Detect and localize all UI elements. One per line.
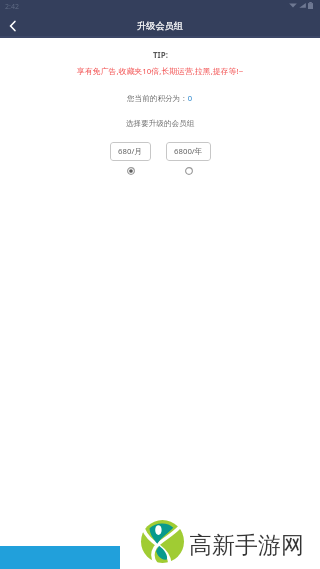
button[interactable]: 680/月: [124, 164, 138, 178]
staticText: 享有免广告,收藏夹10倍,长期运营,拉黑,提存等!~: [77, 66, 244, 77]
button[interactable]: Back: [0, 13, 25, 38]
staticText: 选择要升级的会员组: [126, 119, 195, 129]
staticText: 升级会员组: [137, 20, 183, 32]
button[interactable]: 6800/年: [166, 142, 211, 161]
staticText: 680/月: [118, 146, 143, 157]
staticText: TIP:: [153, 49, 168, 60]
staticText: 6800/年: [174, 146, 203, 157]
staticText: 高新手游网: [189, 531, 304, 560]
staticText: 2:42: [5, 2, 19, 12]
button[interactable]: 680/月: [110, 142, 151, 161]
button[interactable]: 6800/年: [182, 164, 196, 178]
staticText: 您当前的积分为：0: [127, 93, 193, 103]
